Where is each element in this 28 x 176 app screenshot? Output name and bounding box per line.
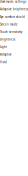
staticText: Screen mode xyxy=(0,23,18,26)
staticText: Brightness xyxy=(0,38,15,41)
staticText: Dark mode settings xyxy=(0,0,26,3)
staticText: Touch sensitivity xyxy=(0,30,22,34)
staticText: Light xyxy=(0,45,7,49)
staticText: Vivid xyxy=(0,60,7,64)
staticText: Adaptive xyxy=(0,53,12,56)
staticText: Adaptive brightness xyxy=(0,7,28,11)
staticText: Eye comfort shield xyxy=(0,15,25,19)
